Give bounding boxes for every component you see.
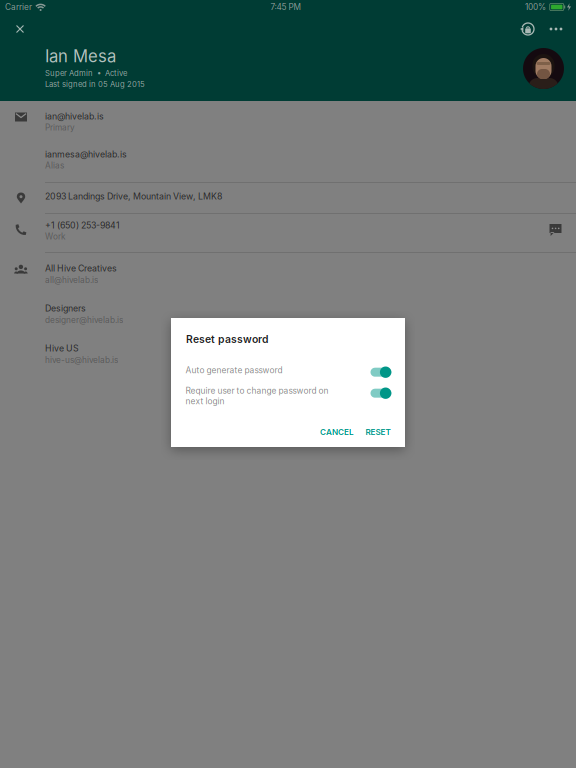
staticText: Carrier (5, 2, 32, 12)
staticText: RESET (365, 427, 390, 437)
staticText: Alias (45, 160, 64, 170)
staticText: hive-us@hivelab.is (45, 355, 118, 365)
button[interactable]: RESET (361, 421, 395, 443)
staticText: All Hive Creatives (45, 263, 117, 274)
staticText: Reset password (186, 333, 268, 346)
staticText: Ian Mesa (45, 46, 116, 66)
staticText: Require user to change password on (185, 385, 328, 396)
staticText: 100% (525, 2, 546, 12)
staticText: ian@hivelab.is (45, 111, 104, 122)
staticText: all@hivelab.is (45, 275, 98, 285)
staticText: next login (185, 396, 224, 406)
staticText: ianmesa@hivelab.is (45, 149, 127, 160)
staticText: Designers (45, 303, 86, 314)
staticText: Super Admin • Active (45, 68, 127, 78)
button[interactable]: Send message (542, 217, 568, 243)
staticText: CANCEL (320, 427, 354, 437)
staticText: Hive US (45, 343, 79, 354)
button[interactable]: Reset password (513, 14, 543, 44)
staticText: Auto generate password (185, 365, 282, 375)
staticText: Primary (45, 122, 75, 132)
staticText: 7:45 PM (271, 2, 301, 12)
staticText: Work (45, 231, 66, 241)
staticText: designer@hivelab.is (45, 315, 123, 325)
button[interactable]: Close (5, 14, 35, 44)
staticText: Last signed in 05 Aug 2015 (45, 79, 145, 89)
button[interactable]: More options (541, 14, 571, 44)
staticText: +1 (650) 253-9841 (45, 220, 120, 231)
staticText: 2093 Landings Drive, Mountain View, LMK8 (45, 191, 222, 202)
button[interactable]: CANCEL (316, 421, 358, 443)
